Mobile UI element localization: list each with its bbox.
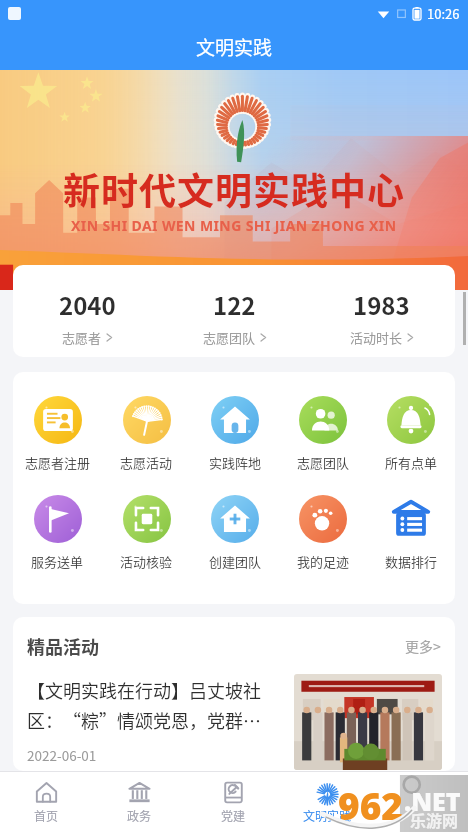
staticText: 2022-06-01	[27, 745, 97, 765]
staticText: 政务	[127, 807, 152, 824]
button[interactable]: 志愿团队	[279, 396, 367, 472]
staticText: 122	[213, 287, 256, 322]
button[interactable]: 我的	[374, 772, 468, 832]
staticText: 【文明实践在行动】吕丈坡社区：“粽”情颂党恩，党群…	[27, 677, 282, 733]
button[interactable]: 【文明实践在行动】吕丈坡社区：“粽”情颂党恩，党群…	[27, 674, 442, 770]
button[interactable]: 党建	[186, 772, 280, 832]
button[interactable]: 服务送单	[13, 495, 102, 571]
button[interactable]: 更多>	[405, 636, 441, 656]
button[interactable]: 所有点单	[367, 396, 455, 472]
staticText: 志愿者注册	[25, 453, 91, 472]
button[interactable]: 志愿者注册	[13, 396, 102, 472]
staticText: 更多>	[405, 636, 441, 656]
staticText: 首页	[34, 807, 59, 824]
staticText: 我的足迹	[297, 552, 350, 571]
staticText: 志愿团队	[203, 328, 256, 347]
button[interactable]: 首页	[0, 772, 93, 832]
staticText: XIN SHI DAI WEN MING SHI JIAN ZHONG XIN	[71, 216, 397, 235]
staticText: 服务送单	[31, 552, 84, 571]
staticText: 新时代文明实践中心	[63, 162, 405, 216]
button[interactable]: 2040	[13, 265, 161, 357]
button[interactable]: 122	[161, 265, 308, 357]
staticText: 志愿团队	[297, 453, 350, 472]
staticText: 乐游网	[410, 808, 459, 831]
staticText: 活动时长	[350, 328, 403, 347]
staticText: 实践阵地	[209, 453, 262, 472]
staticText: 所有点单	[385, 453, 438, 472]
staticText: 我的	[409, 807, 434, 824]
button[interactable]: 创建团队	[191, 495, 279, 571]
staticText: 创建团队	[209, 552, 262, 571]
staticText: 志愿者	[62, 328, 102, 347]
staticText: 志愿活动	[120, 453, 173, 472]
button[interactable]: 政务	[93, 772, 186, 832]
button[interactable]: 实践阵地	[191, 396, 279, 472]
staticText: 精品活动	[27, 633, 99, 659]
button[interactable]: 志愿活动	[102, 396, 191, 472]
staticText: 10:26	[427, 4, 460, 23]
button[interactable]: 1983	[308, 265, 455, 357]
button[interactable]: 数据排行	[367, 495, 455, 571]
staticText: 数据排行	[385, 552, 438, 571]
staticText: 1983	[353, 287, 410, 322]
button[interactable]: 文明实践	[280, 772, 374, 832]
staticText: 962	[338, 780, 404, 830]
staticText: 文明实践	[196, 33, 273, 61]
staticText: 文明实践	[303, 807, 352, 824]
button[interactable]: 活动核验	[102, 495, 191, 571]
staticText: 党建	[221, 807, 246, 824]
staticText: 活动核验	[120, 552, 173, 571]
staticText: 2040	[59, 287, 116, 322]
staticText: .NET	[404, 784, 461, 818]
button[interactable]: 我的足迹	[279, 495, 367, 571]
